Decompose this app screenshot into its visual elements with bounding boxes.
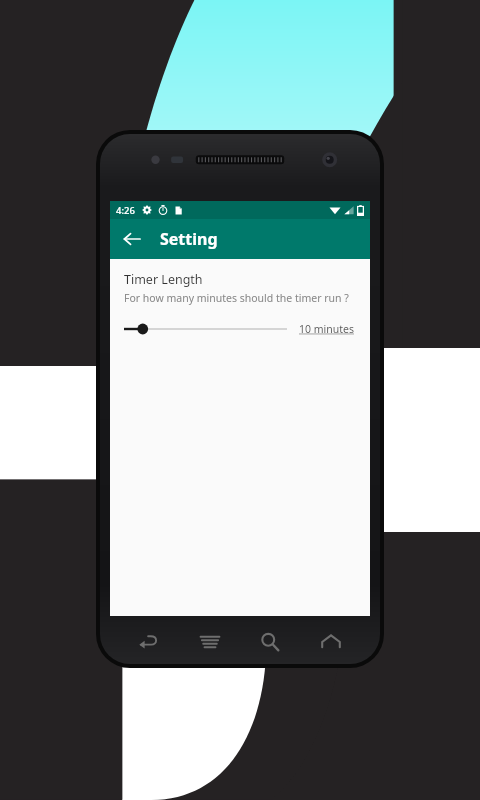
button[interactable]: 10 minutes <box>297 320 356 338</box>
staticText: Timer Length <box>124 271 203 288</box>
button[interactable]: Timer length slider <box>124 318 287 340</box>
button[interactable]: Back <box>114 221 150 257</box>
staticText: For how many minutes should the timer ru… <box>124 291 349 305</box>
staticText: 10 minutes <box>299 322 354 336</box>
button[interactable]: Back <box>127 620 171 664</box>
button[interactable]: Menu <box>188 620 232 664</box>
button[interactable]: Search <box>248 620 292 664</box>
staticText: 4:26 <box>116 204 135 217</box>
staticText: Setting <box>160 228 218 250</box>
button[interactable]: Home <box>309 620 353 664</box>
